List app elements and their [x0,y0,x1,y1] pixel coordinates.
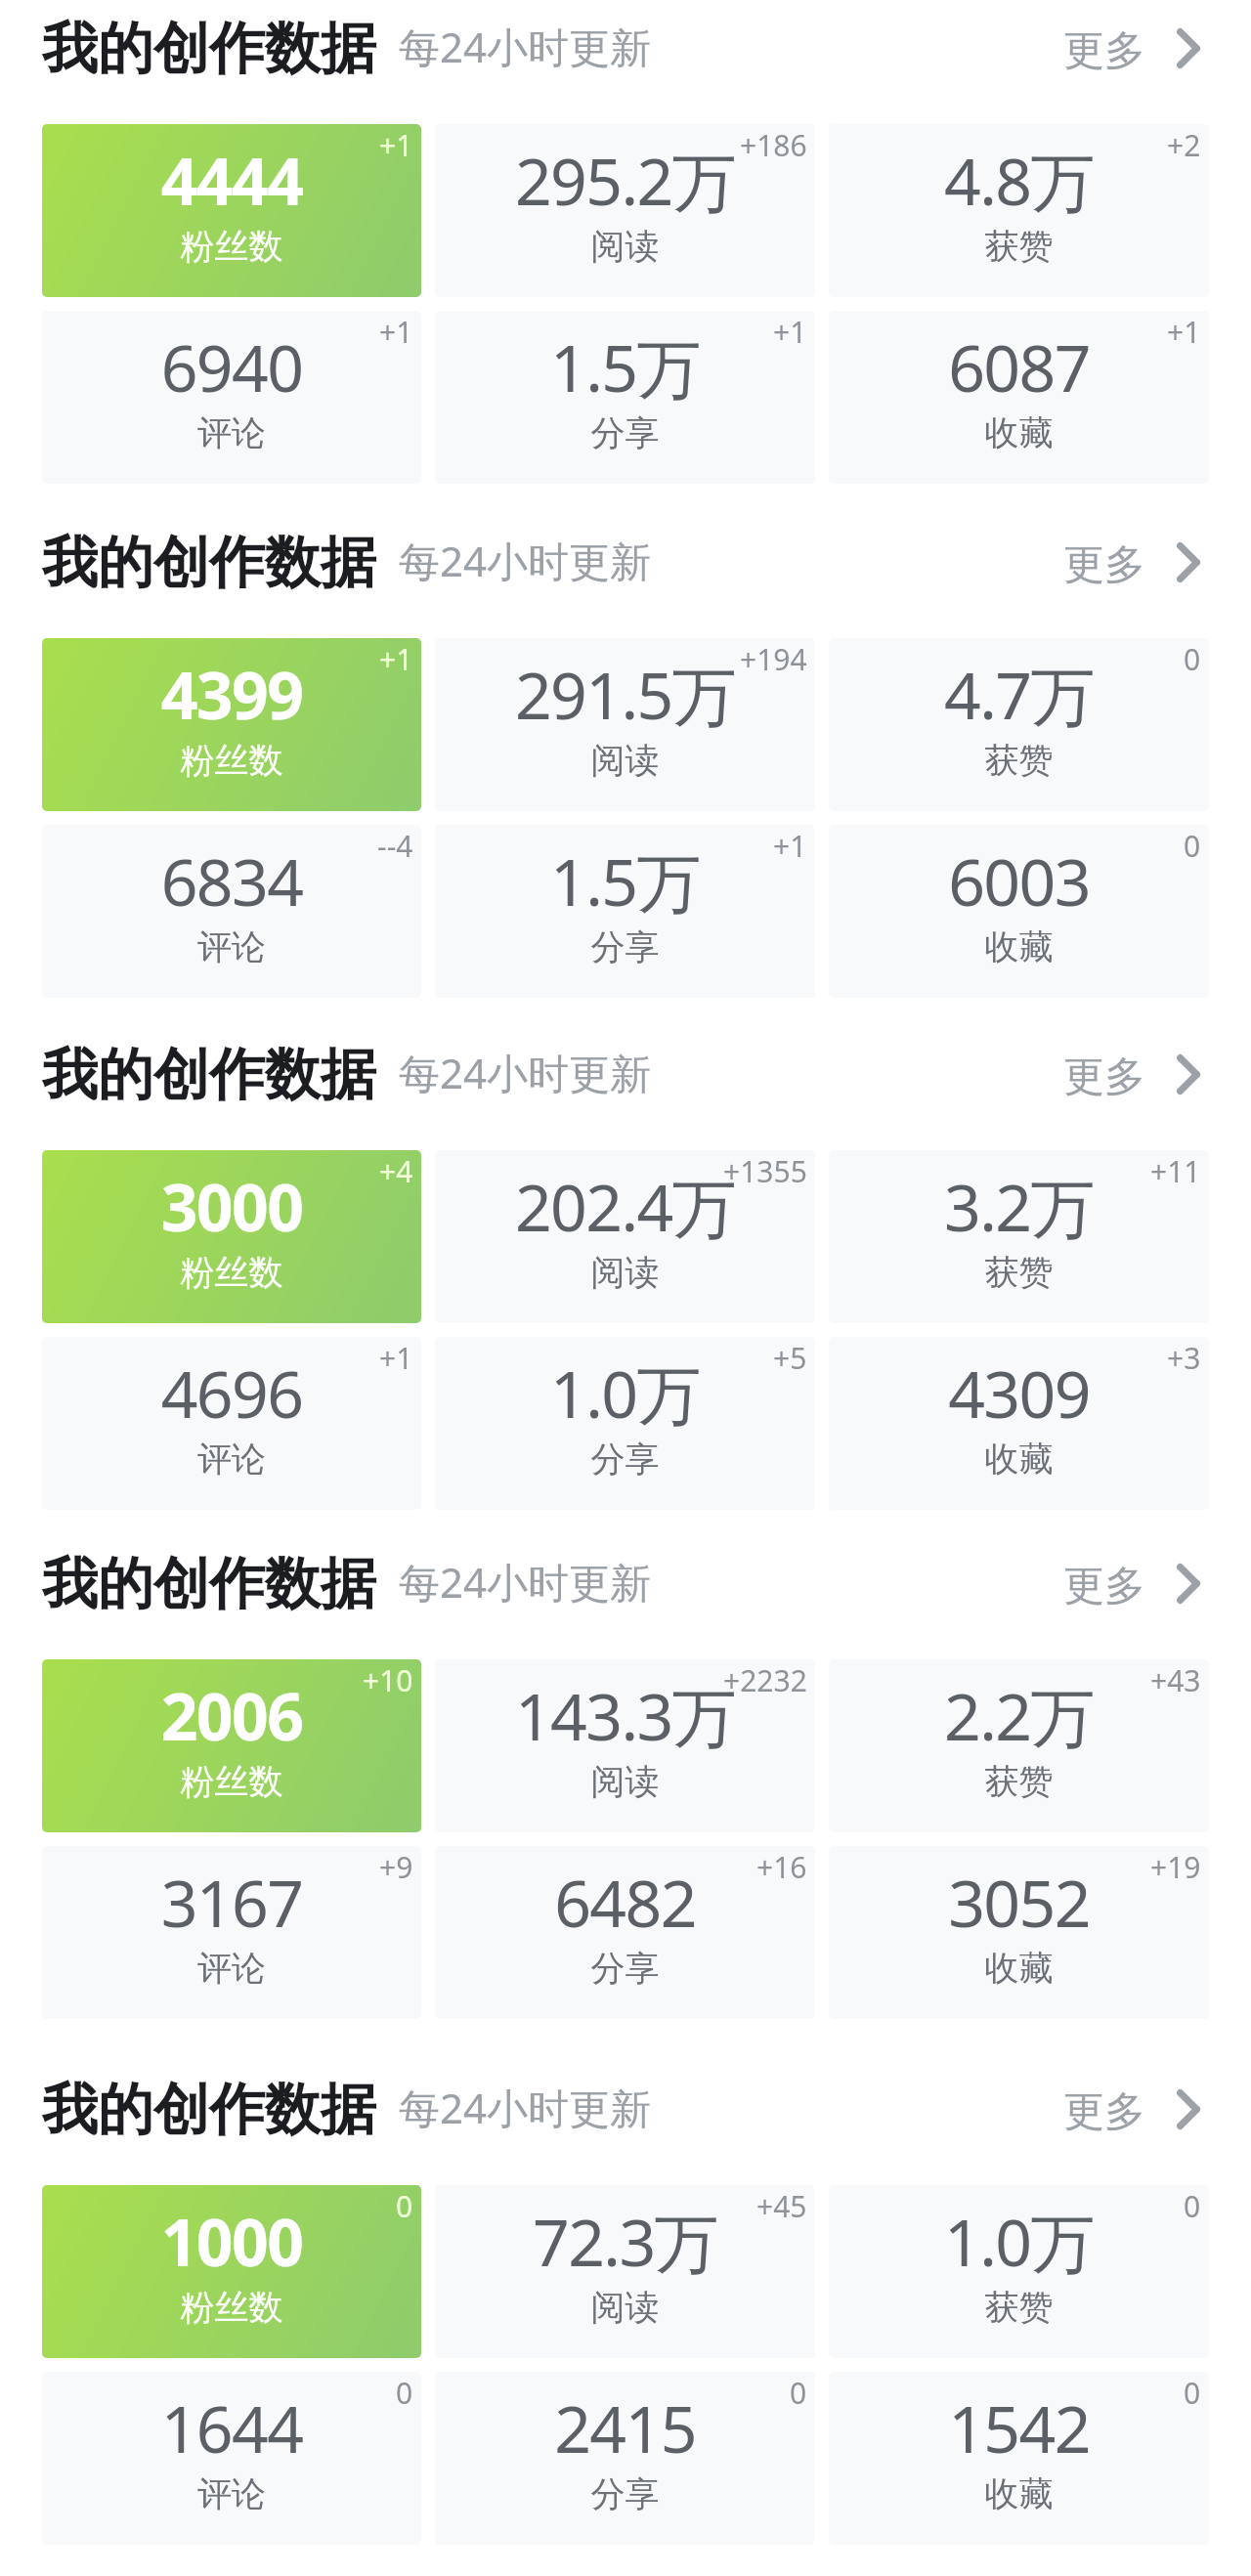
staticText: +5 [773,1338,807,1378]
button[interactable]: +1 [42,311,421,484]
button[interactable]: +9 [42,1846,421,2019]
staticText: 3000 [42,1162,421,1250]
staticText: +3 [1167,1338,1201,1378]
staticText: +9 [379,1847,413,1887]
staticText: 202.4万 [435,1162,815,1250]
staticText: 更多 [1063,1561,1145,1612]
button[interactable]: +1 [42,1337,421,1510]
button[interactable]: +1 [435,825,815,998]
staticText: 6482 [435,1858,815,1946]
staticText: 分享 [435,411,815,454]
staticText: 6087 [829,322,1209,410]
staticText: 更多 [1063,25,1145,77]
staticText: 3052 [829,1858,1209,1946]
button[interactable]: 0 [435,2372,815,2545]
button[interactable]: +1 [435,311,815,484]
staticText: 分享 [435,925,815,968]
button[interactable]: +43 [829,1659,1209,1832]
staticText: +4 [379,1151,413,1191]
button[interactable]: +16 [435,1846,815,2019]
button[interactable]: +10 [42,1659,421,1832]
staticText: 2415 [435,2383,815,2471]
button[interactable]: +194 [435,638,815,811]
other: More [1177,542,1200,582]
button[interactable]: 0 [829,825,1209,998]
button[interactable]: +5 [435,1337,815,1510]
staticText: +45 [756,2186,807,2226]
button[interactable]: 0 [42,2185,421,2358]
staticText: 我的创作数据 [42,1040,376,1110]
button[interactable]: +2 [829,124,1209,297]
button[interactable]: +1355 [435,1150,815,1323]
button[interactable]: 0 [829,2372,1209,2545]
button[interactable]: +1 [829,311,1209,484]
staticText: 每24小时更新 [399,2080,652,2135]
staticText: 4444 [42,136,421,224]
button[interactable]: +1 [42,638,421,811]
staticText: 1.0万 [435,1349,815,1437]
button[interactable]: 更多 [1046,1034,1218,1121]
staticText: +43 [1150,1660,1201,1700]
staticText: 0 [1184,826,1201,866]
button[interactable]: +45 [435,2185,815,2358]
button[interactable]: 更多 [1046,1543,1218,1630]
button[interactable]: +186 [435,124,815,297]
staticText: 1542 [829,2383,1209,2471]
staticText: 4399 [42,650,421,738]
staticText: 更多 [1063,539,1145,591]
staticText: 每24小时更新 [399,533,652,588]
staticText: 6940 [42,322,421,410]
staticText: 3.2万 [829,1162,1209,1250]
staticText: 粉丝数 [42,2286,421,2329]
button[interactable]: 更多 [1046,2069,1218,2156]
staticText: 分享 [435,1438,815,1481]
staticText: 阅读 [435,2286,815,2329]
button[interactable]: 0 [829,2185,1209,2358]
staticText: 72.3万 [435,2197,815,2285]
staticText: +1 [1167,312,1201,352]
button[interactable]: +2232 [435,1659,815,1832]
staticText: 我的创作数据 [42,1549,376,1619]
staticText: 1.5万 [435,322,815,410]
staticText: 291.5万 [435,650,815,738]
staticText: 评论 [42,1438,421,1481]
staticText: 3167 [42,1858,421,1946]
staticText: 收藏 [829,2472,1209,2515]
button[interactable]: --4 [42,825,421,998]
button[interactable]: +11 [829,1150,1209,1323]
staticText: 更多 [1063,1052,1145,1103]
staticText: +11 [1150,1151,1201,1191]
staticText: 获赞 [829,1760,1209,1803]
staticText: 获赞 [829,225,1209,268]
staticText: +1 [773,826,807,866]
staticText: 获赞 [829,2286,1209,2329]
button[interactable]: 0 [829,638,1209,811]
staticText: 6834 [42,837,421,924]
staticText: 1.0万 [829,2197,1209,2285]
staticText: +1 [379,125,413,165]
staticText: 143.3万 [435,1671,815,1759]
button[interactable]: 更多 [1046,8,1218,95]
staticText: 粉丝数 [42,225,421,268]
staticText: 0 [1184,2373,1201,2413]
staticText: 0 [790,2373,807,2413]
staticText: 粉丝数 [42,1760,421,1803]
button[interactable]: +1 [42,124,421,297]
staticText: 4.8万 [829,136,1209,224]
button[interactable]: +3 [829,1337,1209,1510]
staticText: 分享 [435,1947,815,1990]
button[interactable]: +4 [42,1150,421,1323]
staticText: +1 [379,1338,413,1378]
button[interactable]: 0 [42,2372,421,2545]
button[interactable]: +19 [829,1846,1209,2019]
button[interactable]: 更多 [1046,522,1218,609]
staticText: 粉丝数 [42,739,421,782]
staticText: 1644 [42,2383,421,2471]
staticText: +1 [773,312,807,352]
staticText: +19 [1150,1847,1201,1887]
staticText: 4.7万 [829,650,1209,738]
staticText: +2232 [723,1660,807,1700]
staticText: 阅读 [435,739,815,782]
staticText: 收藏 [829,1947,1209,1990]
staticText: 每24小时更新 [399,1554,652,1610]
